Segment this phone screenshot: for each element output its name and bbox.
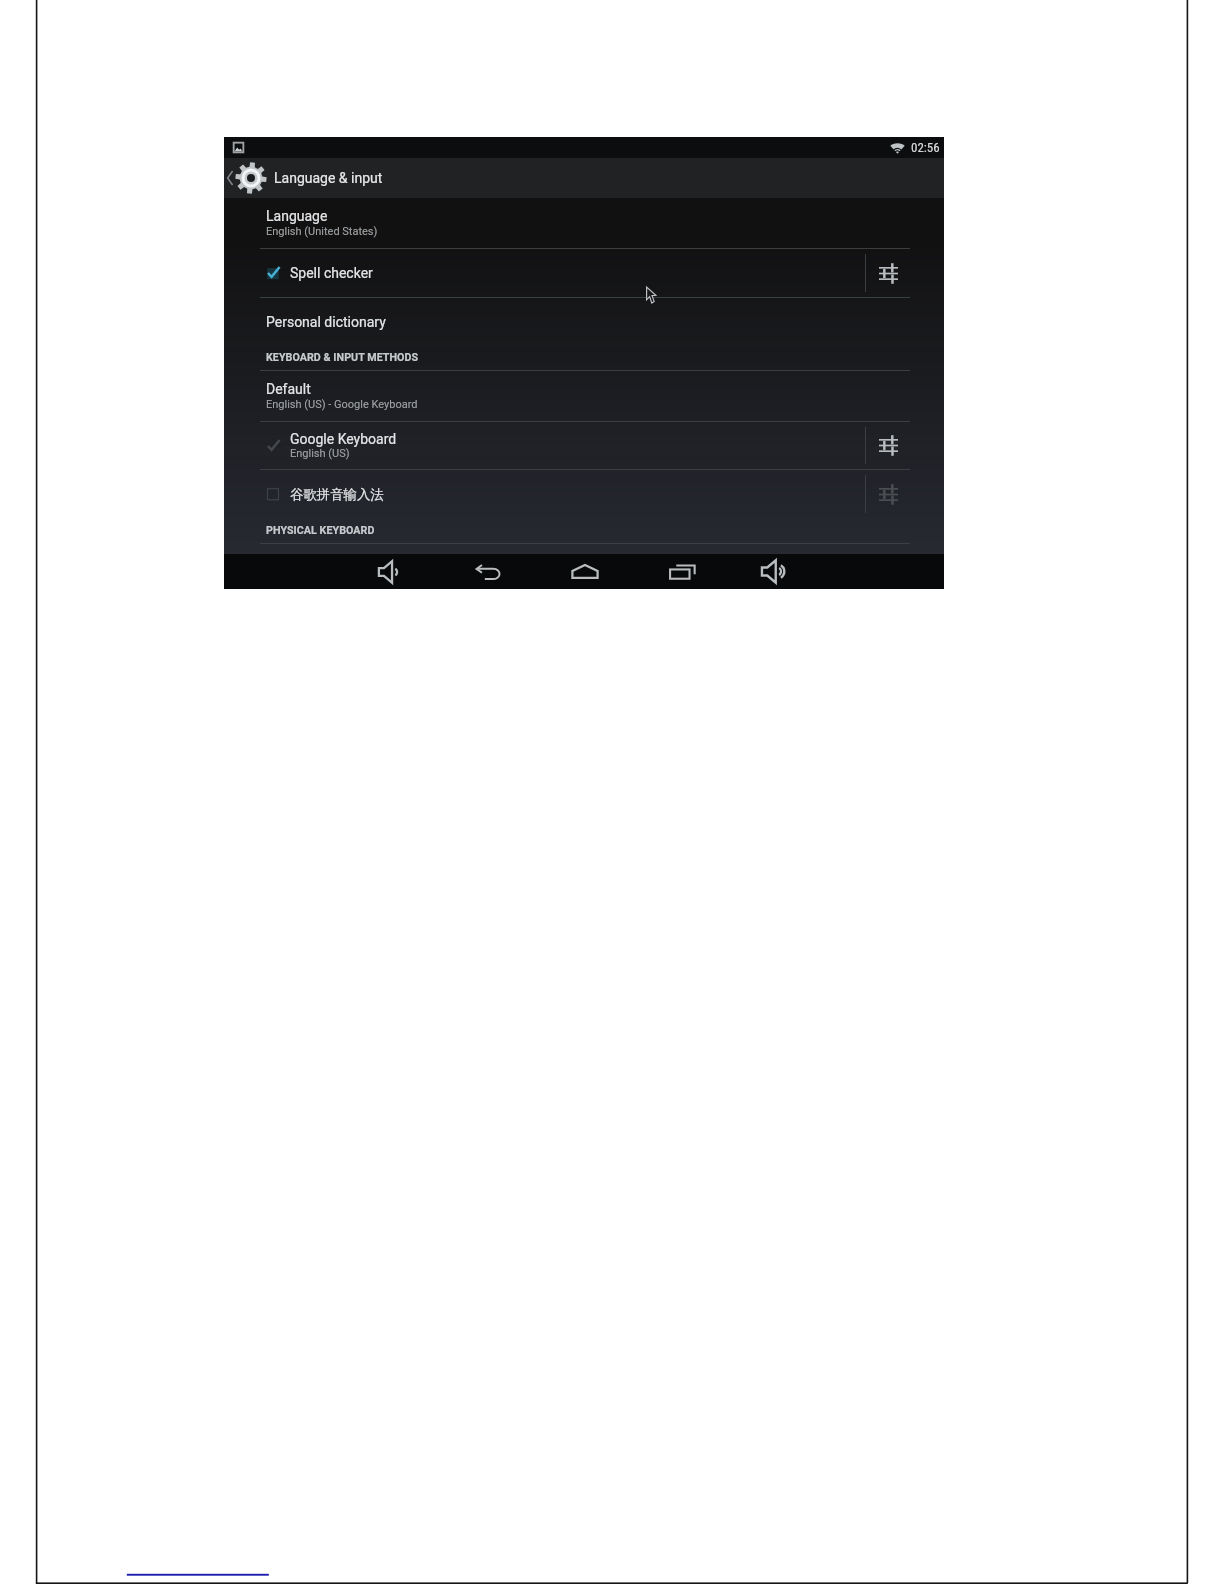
button[interactable]: Settings for Google Keyboard [866,422,910,469]
button[interactable]: 谷歌拼音输入法 [224,470,865,518]
staticText: Default [266,381,311,397]
button[interactable]: Settings for 谷歌拼音输入法 [866,470,910,518]
button[interactable]: Back [465,554,513,589]
staticText: Spell checker [290,265,373,281]
staticText: Language [266,208,328,224]
button[interactable]: Volume up [751,554,799,589]
staticText: Personal dictionary [266,314,386,330]
staticText: English (United States) [266,225,378,238]
staticText: PHYSICAL KEYBOARD [266,524,375,537]
button[interactable]: Recent apps [658,554,706,589]
staticText: 02:56 [911,140,940,155]
button[interactable]: Default [224,371,944,421]
button[interactable]: Navigate up: Language & input [224,158,395,198]
staticText: English (US) [290,447,350,460]
button[interactable]: Language [224,198,944,248]
staticText: 谷歌拼音输入法 [290,486,384,503]
button[interactable]: Spell checker [224,249,865,297]
staticText: Language & input [274,170,383,186]
button[interactable]: Volume down [365,554,413,589]
button[interactable]: Google Keyboard [224,422,865,469]
staticText: English (US) - Google Keyboard [266,398,418,411]
button[interactable]: Settings for Spell checker [866,249,910,297]
button[interactable]: Personal dictionary [224,298,944,345]
staticText: KEYBOARD & INPUT METHODS [266,351,419,364]
staticText: Google Keyboard [290,431,397,447]
button[interactable]: Home [561,554,609,589]
